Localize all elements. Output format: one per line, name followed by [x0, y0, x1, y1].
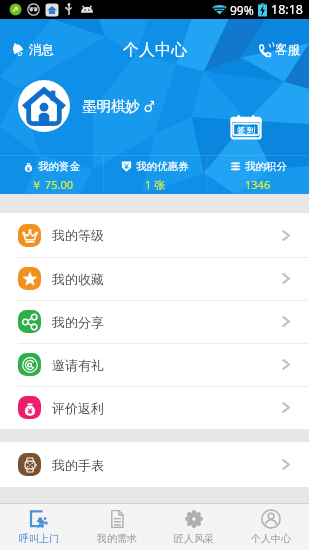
staticText: 我的等级 [52, 227, 104, 243]
button[interactable]: 我的积分 [207, 155, 309, 194]
button[interactable]: 我的手表 [0, 442, 309, 487]
staticText: 99% [230, 2, 254, 18]
staticText: 我的手表 [52, 457, 104, 473]
button[interactable]: 我的需求 [78, 504, 155, 550]
button[interactable]: 我的收藏 [0, 257, 309, 300]
button[interactable]: 签到 [230, 114, 262, 139]
staticText: 匠人风采 [174, 532, 214, 545]
staticText: 消息 [29, 42, 54, 58]
button[interactable]: 邀请有礼 [0, 343, 309, 386]
staticText: 个人中心 [251, 532, 291, 545]
staticText: 1 张 [145, 177, 166, 192]
staticText: ￥ 75.00 [31, 177, 73, 192]
button[interactable]: 个人中心 [232, 504, 309, 550]
staticText: 1346 [245, 177, 271, 192]
button[interactable]: 我的分享 [0, 300, 309, 343]
staticText: 邀请有礼 [52, 357, 104, 373]
staticText: 我的收藏 [52, 271, 104, 287]
button[interactable]: 我的优惠券 [104, 155, 206, 194]
button[interactable]: 我的等级 [0, 213, 309, 257]
staticText: 我的积分 [245, 160, 287, 173]
staticText: 我的需求 [97, 532, 137, 545]
staticText: 签 到 [237, 124, 256, 135]
staticText: 客服 [275, 42, 300, 58]
button[interactable]: 客服 [248, 36, 309, 64]
staticText: 评价返利 [52, 400, 104, 416]
staticText: 18:18 [271, 1, 303, 18]
button[interactable]: 评价返利 [0, 386, 309, 429]
staticText: 个人中心 [123, 40, 187, 60]
staticText: 我的优惠券 [136, 160, 189, 173]
button[interactable]: 呼叫上门 [0, 504, 78, 550]
staticText: 我的资金 [38, 160, 80, 173]
staticText: 墨明棋妙 [82, 97, 140, 115]
button[interactable]: 匠人风采 [155, 504, 232, 550]
button[interactable]: 我的资金 [0, 155, 103, 194]
button[interactable]: 消息 [0, 36, 64, 64]
button[interactable]: 墨明棋妙 [18, 80, 154, 132]
staticText: 我的分享 [52, 314, 104, 330]
staticText: 呼叫上门 [19, 532, 59, 545]
